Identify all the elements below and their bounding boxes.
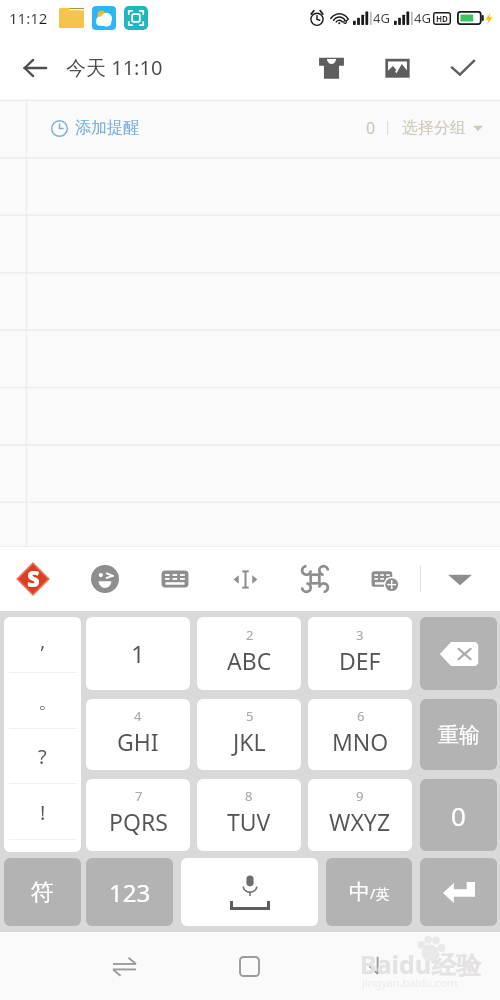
- button[interactable]: 6: [308, 699, 412, 770]
- staticText: 。: [38, 689, 58, 714]
- staticText: 8: [245, 787, 253, 805]
- button[interactable]: Move cursor: [220, 554, 270, 604]
- staticText: 4G: [414, 9, 431, 27]
- staticText: /英: [370, 884, 390, 903]
- button[interactable]: 2: [197, 617, 301, 690]
- staticText: 9: [356, 787, 364, 805]
- button[interactable]: Keyboard layout: [150, 554, 200, 604]
- button[interactable]: Switch apps: [98, 940, 150, 992]
- button[interactable]: 5: [197, 699, 301, 770]
- button[interactable]: Punctuation: [4, 617, 81, 852]
- staticText: 选择分组: [402, 118, 466, 138]
- staticText: 7: [135, 787, 143, 805]
- button[interactable]: 123: [86, 858, 173, 926]
- staticText: 1: [131, 637, 145, 670]
- button[interactable]: Space: [181, 858, 318, 926]
- button[interactable]: Backspace: [420, 617, 497, 690]
- staticText: 0: [366, 117, 376, 139]
- button[interactable]: 3: [308, 617, 412, 690]
- button[interactable]: 符: [4, 858, 81, 926]
- button[interactable]: Home: [223, 940, 275, 992]
- staticText: 添加提醒: [75, 118, 139, 138]
- staticText: Baidu经验: [360, 947, 482, 981]
- staticText: DEF: [339, 645, 381, 676]
- staticText: ,: [40, 627, 46, 654]
- staticText: 2: [246, 626, 254, 644]
- staticText: S: [27, 563, 40, 593]
- staticText: PQRS: [109, 806, 168, 837]
- button[interactable]: 选择分组: [402, 118, 483, 138]
- staticText: TUV: [227, 806, 271, 837]
- button[interactable]: 7: [86, 779, 190, 851]
- staticText: 符: [31, 878, 54, 907]
- button[interactable]: Insert image: [376, 47, 418, 89]
- button[interactable]: 9: [308, 779, 412, 851]
- staticText: ABC: [227, 645, 272, 676]
- button[interactable]: 4: [86, 699, 190, 770]
- button[interactable]: Back: [16, 49, 54, 87]
- button[interactable]: Back: [349, 940, 401, 992]
- button[interactable]: Keyboard settings: [360, 554, 410, 604]
- staticText: 5: [246, 707, 254, 725]
- button[interactable]: 添加提醒: [51, 118, 139, 138]
- staticText: MNO: [332, 726, 389, 757]
- staticText: 重输: [438, 722, 480, 748]
- button[interactable]: Emoji: [80, 554, 130, 604]
- staticText: 123: [109, 876, 151, 909]
- button[interactable]: Enter: [420, 858, 497, 926]
- staticText: 4G: [373, 9, 390, 27]
- staticText: jingyan.baidu.com: [362, 975, 458, 990]
- staticText: GHI: [117, 726, 159, 757]
- button[interactable]: 1: [86, 617, 190, 690]
- staticText: JKL: [233, 726, 266, 757]
- staticText: 4: [134, 707, 142, 725]
- staticText: 11:12: [9, 8, 48, 28]
- button[interactable]: Sogou input: [8, 554, 58, 604]
- button[interactable]: 中: [326, 858, 412, 926]
- staticText: 6: [357, 707, 365, 725]
- button[interactable]: 8: [197, 779, 301, 851]
- button[interactable]: Theme: [310, 47, 352, 89]
- button[interactable]: 重输: [420, 699, 497, 770]
- button[interactable]: Done: [442, 47, 484, 89]
- staticText: WXYZ: [329, 806, 391, 837]
- button[interactable]: Hide keyboard: [435, 554, 485, 604]
- staticText: 0: [451, 798, 466, 833]
- staticText: 今天 11:10: [66, 54, 163, 81]
- button[interactable]: Shortcuts: [290, 554, 340, 604]
- staticText: 中: [349, 879, 370, 905]
- button[interactable]: 0: [420, 779, 497, 851]
- staticText: 3: [356, 626, 364, 644]
- staticText: !: [40, 799, 46, 826]
- staticText: HD: [436, 13, 448, 24]
- staticText: ?: [38, 743, 47, 770]
